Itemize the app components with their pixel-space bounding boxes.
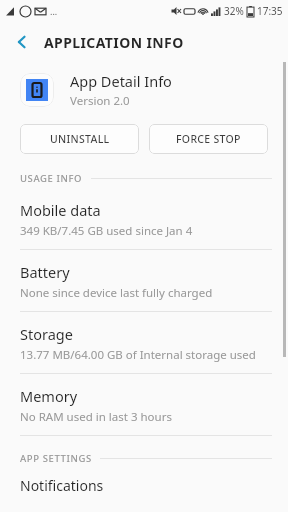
staticText: Memory	[20, 386, 78, 406]
staticText: USAGE INFO	[20, 172, 83, 185]
staticText: 349 KB/7.45 GB used since Jan 4	[20, 223, 193, 239]
button[interactable]: Battery	[0, 250, 288, 312]
staticText: Notifications	[20, 476, 104, 495]
staticText: Mobile data	[20, 200, 101, 220]
button[interactable]: App Detail Info	[0, 62, 288, 118]
staticText: APPLICATION INFO	[44, 33, 184, 52]
button[interactable]: Storage	[0, 312, 288, 374]
staticText: 32%	[224, 4, 244, 18]
button[interactable]: Back	[8, 28, 36, 56]
button[interactable]: Notifications	[0, 468, 288, 495]
staticText: Version 2.0	[70, 93, 130, 109]
staticText: 13.77 MB/64.00 GB of Internal storage us…	[20, 347, 256, 363]
staticText: ...	[50, 5, 58, 17]
staticText: FORCE STOP	[176, 132, 241, 146]
staticText: None since device last fully charged	[20, 285, 213, 301]
staticText: APP SETTINGS	[20, 452, 92, 465]
staticText: App Detail Info	[70, 71, 172, 91]
staticText: Storage	[20, 324, 73, 344]
staticText: Battery	[20, 262, 70, 282]
button[interactable]: FORCE STOP	[149, 124, 268, 154]
button[interactable]: Mobile data	[0, 188, 288, 250]
button[interactable]: UNINSTALL	[20, 124, 139, 154]
staticText: No RAM used in last 3 hours	[20, 409, 172, 425]
button[interactable]: Memory	[0, 374, 288, 436]
staticText: 17:35	[257, 4, 283, 18]
staticText: UNINSTALL	[50, 132, 110, 146]
